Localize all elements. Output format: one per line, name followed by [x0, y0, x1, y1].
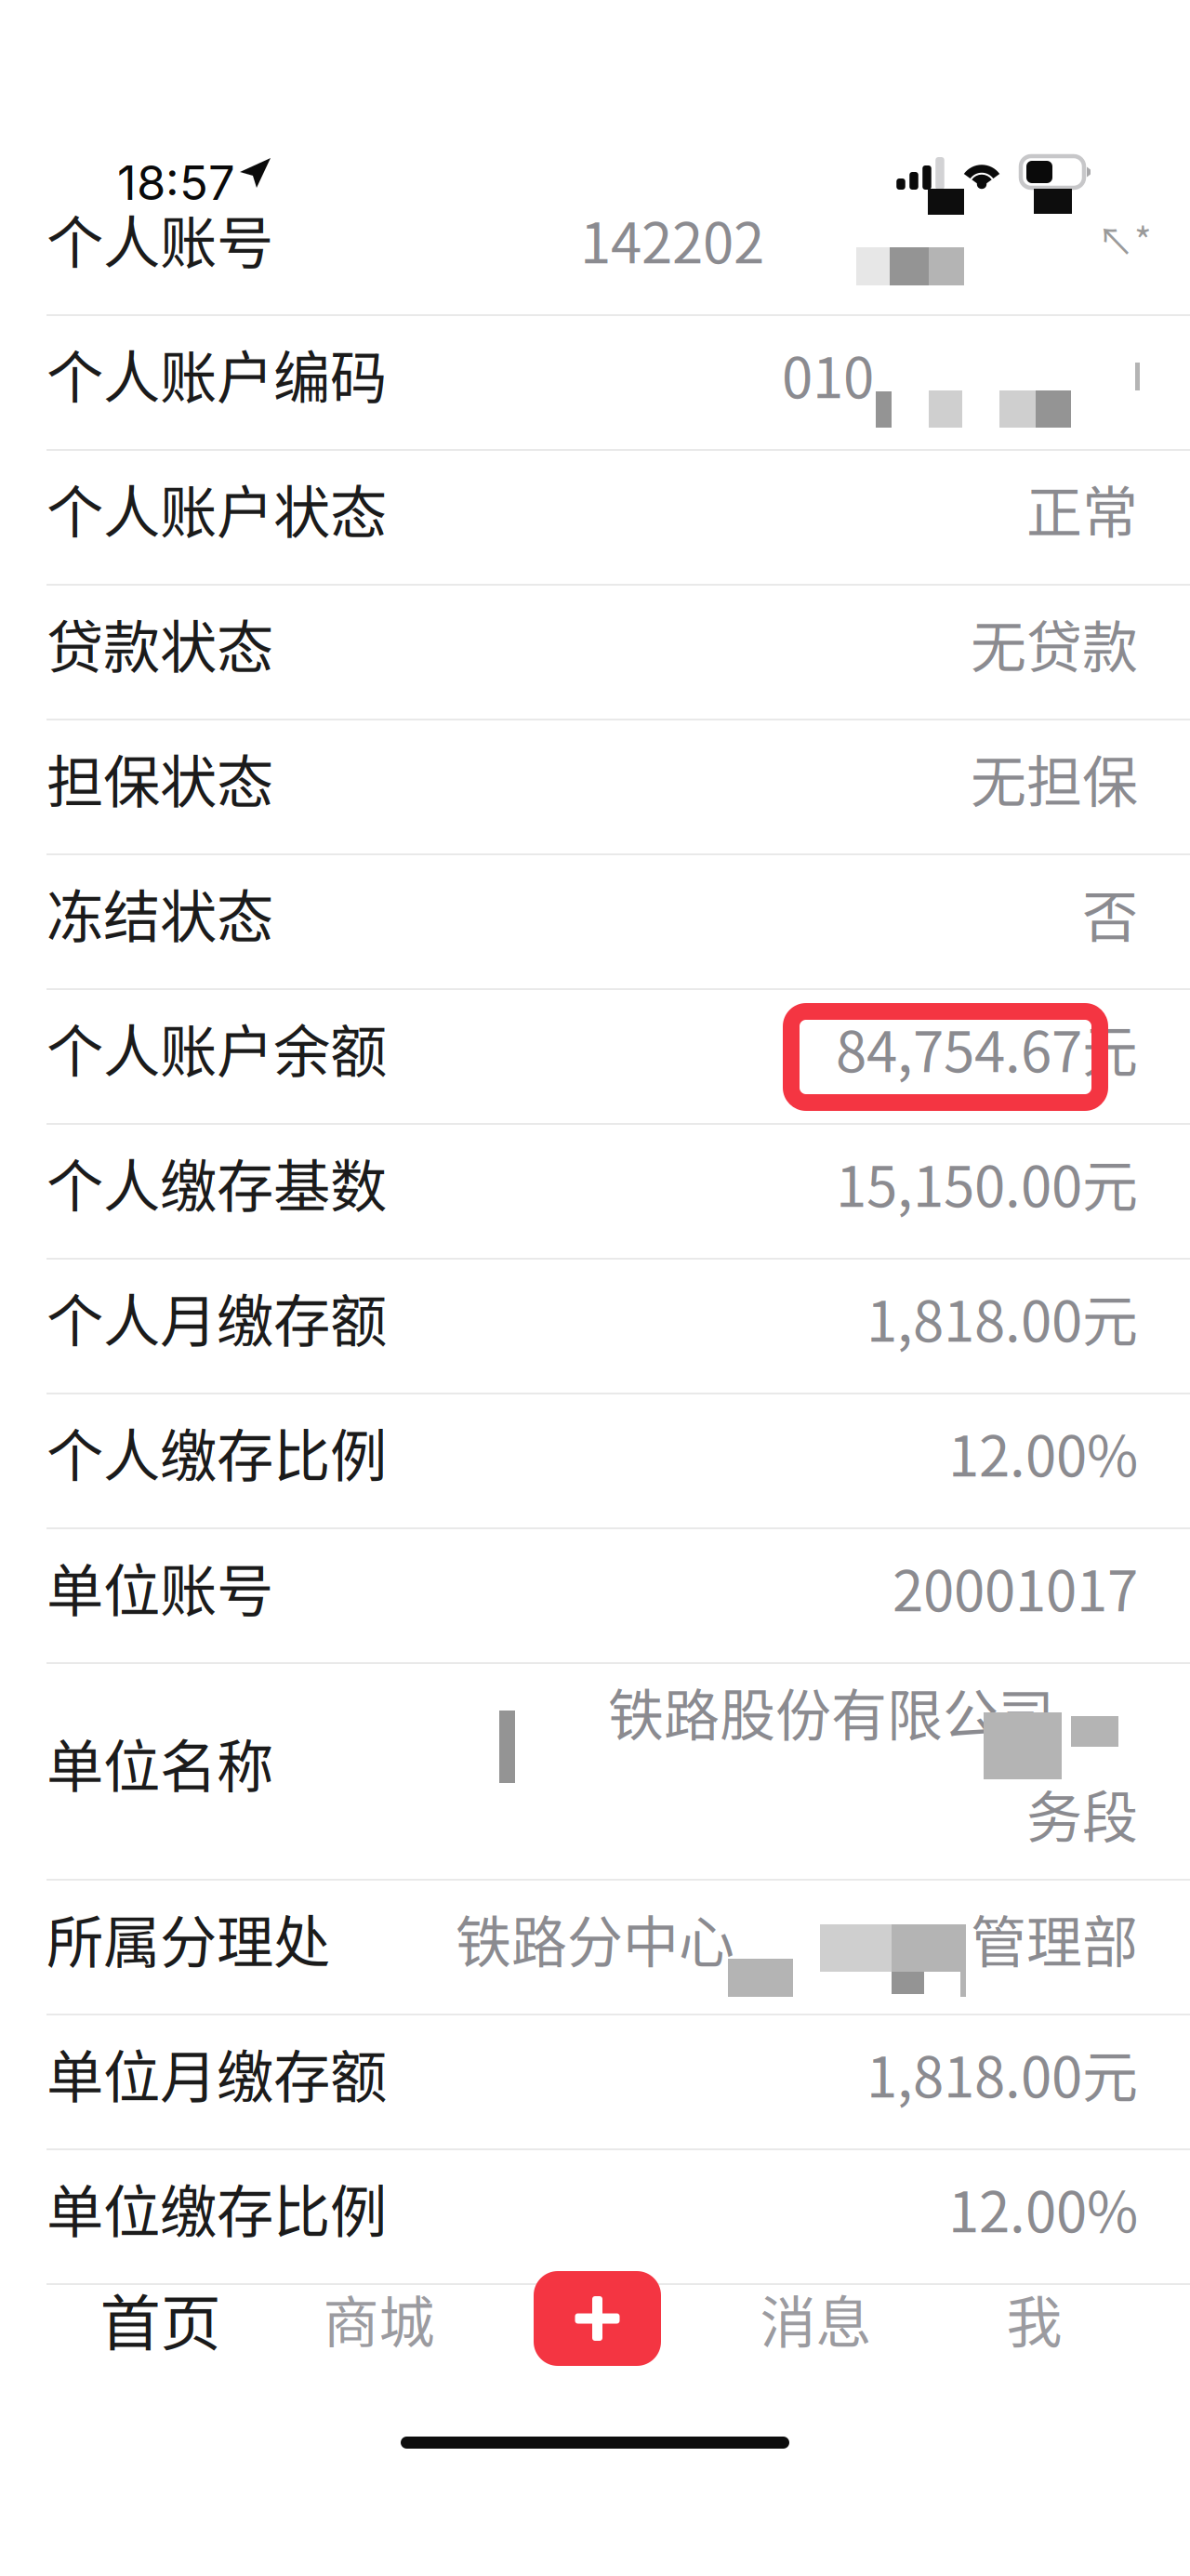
staticText: 个人账号: [46, 198, 273, 280]
button[interactable]: 担保状态: [0, 720, 1190, 855]
button[interactable]: 个人月缴存额: [0, 1260, 1190, 1394]
staticText: 无贷款: [971, 603, 1138, 684]
button[interactable]: 个人缴存基数: [0, 1125, 1190, 1260]
staticText: 个人账户状态: [46, 467, 387, 550]
staticText: 84,754.67元: [836, 1007, 1138, 1088]
staticText: 担保状态: [46, 737, 273, 819]
staticText: 单位名称: [46, 1721, 273, 1804]
staticText: 消息: [760, 2278, 872, 2359]
button[interactable]: 个人账号: [0, 181, 1190, 316]
staticText: 个人缴存比例: [46, 1411, 387, 1493]
staticText: 个人月缴存额: [46, 1276, 387, 1359]
button[interactable]: 首页: [51, 2262, 270, 2375]
staticText: 1,818.00元: [866, 1277, 1138, 1358]
staticText: 所属分理处: [46, 1897, 330, 1980]
button[interactable]: 贷款状态: [0, 586, 1190, 720]
button[interactable]: 单位名称: [0, 1664, 1190, 1881]
staticText: 个人账户余额: [46, 1006, 387, 1089]
button[interactable]: 个人账户状态: [0, 451, 1190, 586]
button[interactable]: 单位月缴存额: [0, 2015, 1190, 2150]
staticText: 18:57: [117, 154, 235, 211]
button[interactable]: 个人账户编码: [0, 316, 1190, 451]
staticText: 15,150.00元: [836, 1142, 1138, 1223]
staticText: 铁路股份有限公司: [608, 1671, 1054, 1752]
staticText: 142202: [580, 199, 764, 279]
staticText: ↖*: [1097, 212, 1152, 266]
staticText: 首页: [100, 2275, 221, 2362]
staticText: 1,818.00元: [866, 2033, 1138, 2114]
staticText: 12.00%: [948, 2168, 1138, 2248]
staticText: 个人账户编码: [46, 332, 387, 415]
staticText: 单位月缴存额: [46, 2032, 387, 2114]
button[interactable]: 单位缴存比例: [0, 2150, 1190, 2285]
staticText: 个人缴存基数: [46, 1141, 387, 1224]
button[interactable]: 商城: [270, 2262, 488, 2375]
button[interactable]: 单位账号: [0, 1529, 1190, 1664]
staticText: 20001017: [892, 1547, 1138, 1627]
button[interactable]: 所属分理处: [0, 1881, 1190, 2015]
staticText: 单位缴存比例: [46, 2167, 387, 2249]
staticText: 贷款状态: [46, 602, 273, 685]
staticText: 我: [1006, 2278, 1062, 2359]
button[interactable]: 个人缴存比例: [0, 1394, 1190, 1529]
staticText: 务段: [1026, 1773, 1138, 1854]
staticText: 铁路分中心: [456, 1898, 734, 1979]
button[interactable]: 消息: [707, 2262, 925, 2375]
staticText: 010: [782, 333, 874, 414]
staticText: 单位账号: [46, 1546, 273, 1628]
staticText: 冻结状态: [46, 872, 273, 954]
button[interactable]: 个人账户余额: [0, 990, 1190, 1125]
staticText: 正常: [1026, 468, 1138, 549]
staticText: 12.00%: [948, 1412, 1138, 1493]
staticText: 商城: [323, 2278, 435, 2359]
staticText: 无担保: [971, 738, 1138, 819]
button[interactable]: 我: [925, 2262, 1144, 2375]
button[interactable]: 冻结状态: [0, 855, 1190, 990]
button[interactable]: 发布: [488, 2262, 707, 2375]
staticText: 否: [1082, 873, 1138, 953]
staticText: 管理部: [971, 1898, 1138, 1979]
